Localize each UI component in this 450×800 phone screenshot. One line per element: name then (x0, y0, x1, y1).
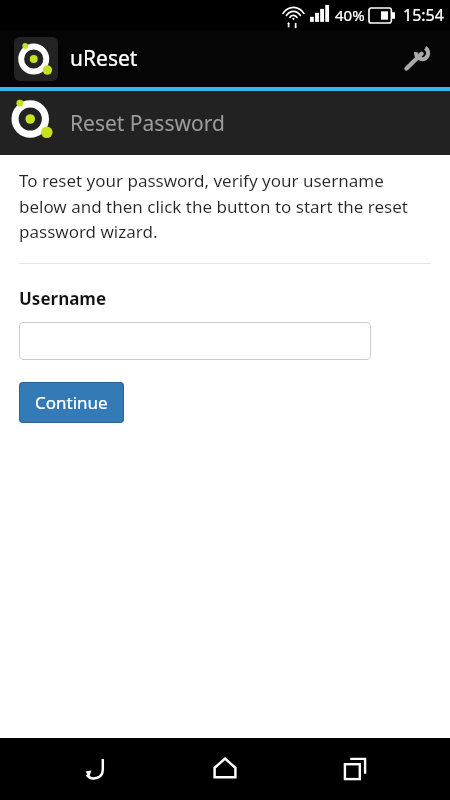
button[interactable]: Continue (19, 382, 124, 423)
staticText: 40% (335, 5, 365, 25)
staticText: Reset Password (70, 109, 225, 138)
staticText: Continue (35, 391, 108, 414)
staticText: uReset (70, 44, 138, 73)
button[interactable]: Settings (392, 35, 440, 83)
staticText: 15:54 (403, 4, 444, 26)
staticText: Username (19, 287, 107, 310)
button[interactable]: Recent apps (320, 738, 390, 800)
button[interactable]: Back (60, 738, 130, 800)
button[interactable]: Home (190, 738, 260, 800)
staticText: To reset your password, verify your user… (19, 169, 434, 243)
button[interactable]: Username input field (19, 322, 371, 360)
